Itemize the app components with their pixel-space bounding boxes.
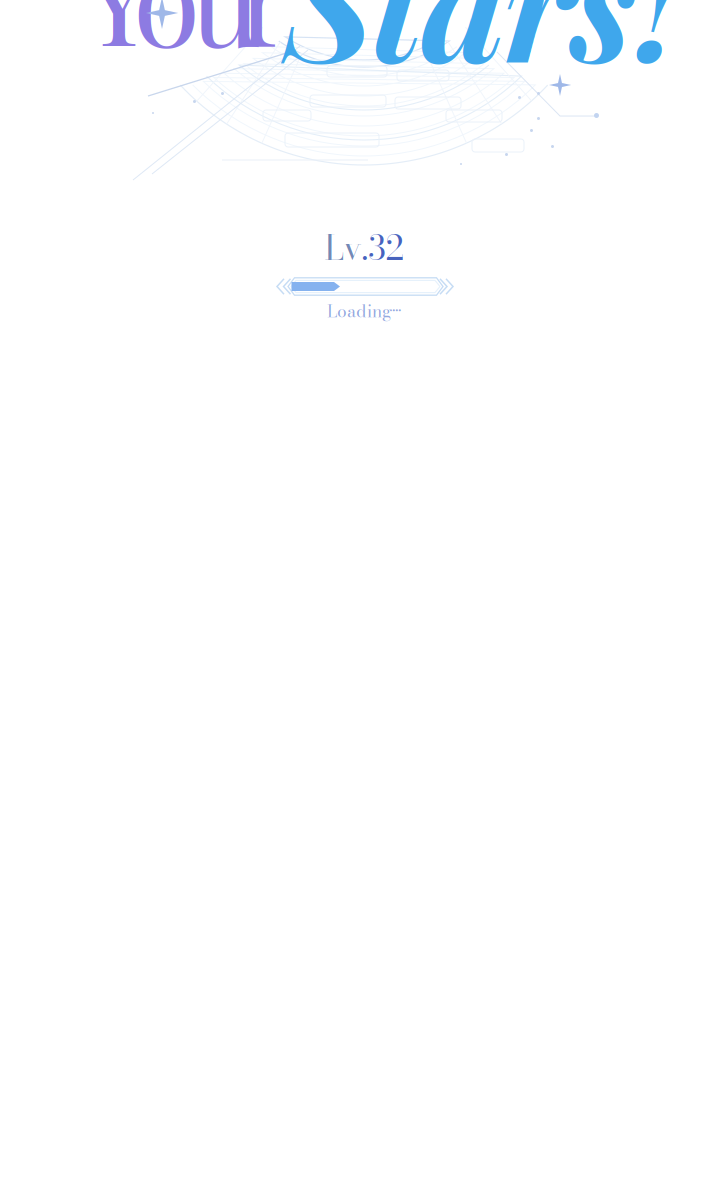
staticText: Stars! bbox=[285, 0, 681, 101]
staticText: Y bbox=[80, 0, 156, 78]
staticText: u bbox=[190, 0, 261, 77]
staticText: Lv bbox=[324, 223, 361, 273]
staticText: Loading··· bbox=[327, 298, 401, 324]
staticText: .32 bbox=[361, 223, 403, 273]
staticText: o bbox=[133, 0, 200, 77]
staticText: r bbox=[238, 0, 293, 77]
